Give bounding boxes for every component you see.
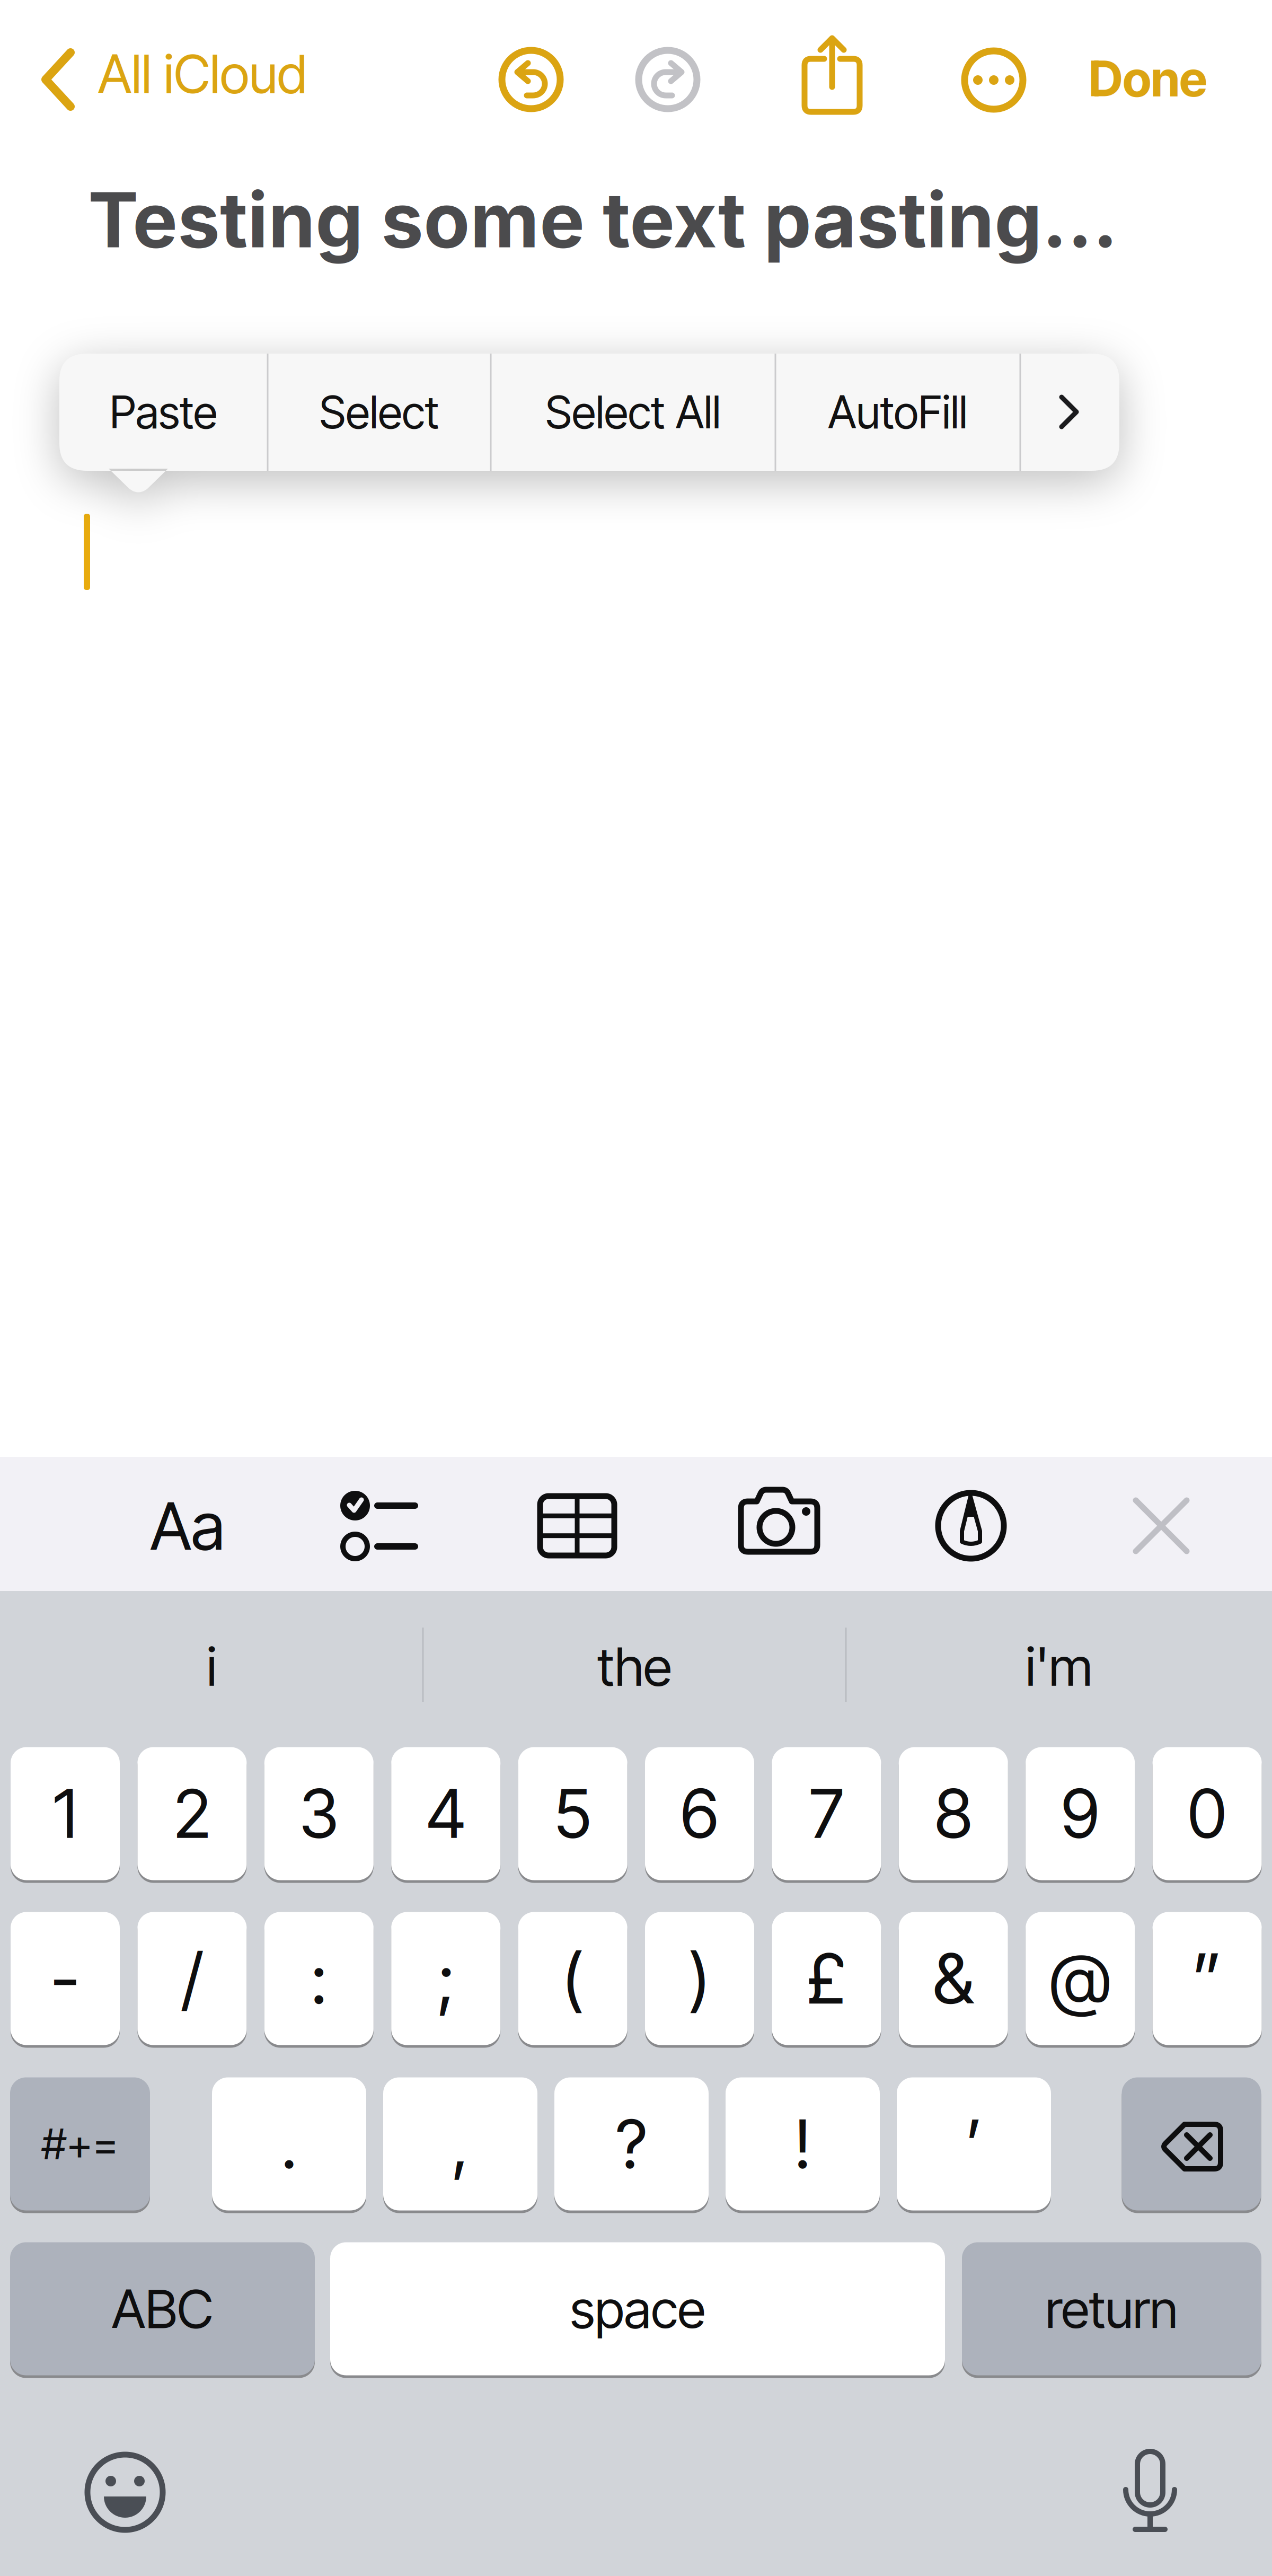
button[interactable]: Done [1068,36,1227,121]
button[interactable]: i [0,1591,423,1742]
button[interactable] [960,47,1027,113]
staticText: #+= [42,2118,118,2170]
staticText: All iCloud [98,42,307,106]
button[interactable] [1098,1462,1225,1589]
staticText: Aa [150,1486,225,1565]
staticText: i [207,1634,217,1698]
staticText: : [311,1937,327,2020]
staticText: return [1045,2277,1178,2340]
staticText: Select [319,385,439,439]
staticText: i'm [1026,1634,1092,1698]
button[interactable]: ) [645,1910,754,2047]
staticText: @ [1050,1937,1111,2020]
staticText: ” [1192,1937,1222,2020]
button[interactable] [80,2447,170,2537]
staticText: AutoFill [828,385,968,439]
button[interactable]: ABC [10,2240,315,2377]
button[interactable]: i'm [847,1591,1271,1742]
button[interactable] [514,1462,641,1589]
staticText: ) [689,1937,710,2020]
button[interactable]: 1 [11,1745,120,1882]
staticText: 8 [935,1773,972,1854]
button[interactable]: £ [772,1910,881,2047]
button[interactable]: space [330,2240,945,2377]
staticText: . [281,2104,297,2184]
staticText: Paste [110,385,217,439]
button[interactable]: Paste [59,354,268,471]
button[interactable] [715,1462,843,1589]
button[interactable]: the [424,1591,845,1742]
button[interactable] [1020,354,1119,471]
button[interactable]: 2 [137,1745,247,1882]
staticText: ; [437,1937,455,2020]
button[interactable] [498,46,564,113]
button[interactable]: Aa [124,1462,251,1589]
button[interactable]: & [899,1910,1008,2047]
button[interactable]: 4 [391,1745,500,1882]
staticText: 7 [809,1773,844,1854]
button[interactable] [1122,2075,1261,2213]
button[interactable]: Select [268,354,491,471]
staticText: 2 [174,1773,211,1854]
button[interactable]: ? [554,2075,709,2213]
staticText: 3 [299,1773,339,1854]
staticText: 1 [53,1773,77,1854]
button[interactable]: 9 [1026,1745,1135,1882]
staticText: space [570,2277,705,2340]
button[interactable]: ’ [897,2075,1051,2213]
button[interactable]: ! [726,2075,880,2213]
button[interactable] [634,46,701,113]
button[interactable] [795,30,869,120]
staticText: 0 [1188,1773,1226,1854]
button[interactable]: , [383,2075,537,2213]
staticText: 4 [426,1773,466,1854]
button[interactable]: 7 [772,1745,881,1882]
staticText: ABC [112,2277,213,2341]
button[interactable]: return [962,2240,1261,2377]
button[interactable]: All iCloud [34,37,310,122]
staticText: 9 [1061,1773,1099,1854]
staticText: £ [806,1937,847,2020]
staticText: ? [616,2104,647,2184]
staticText: , [452,2104,469,2184]
staticText: 6 [681,1773,719,1854]
button[interactable] [311,1462,438,1589]
button[interactable]: . [212,2075,366,2213]
button[interactable]: #+= [10,2075,150,2213]
button[interactable]: / [137,1910,247,2047]
staticText: - [51,1937,79,2020]
staticText: Testing some text pasting… [88,174,1118,266]
button[interactable]: : [264,1910,374,2047]
button[interactable]: ; [391,1910,500,2047]
staticText: Select All [545,385,721,439]
button[interactable] [907,1462,1035,1589]
button[interactable]: 0 [1153,1745,1262,1882]
staticText: ! [794,2104,811,2184]
button[interactable]: 5 [518,1745,627,1882]
button[interactable]: 8 [899,1745,1008,1882]
button[interactable]: @ [1026,1910,1135,2047]
staticText: & [933,1937,974,2020]
button[interactable]: 6 [645,1745,754,1882]
button[interactable]: ” [1153,1910,1262,2047]
staticText: ( [562,1937,584,2020]
button[interactable]: 3 [264,1745,374,1882]
button[interactable]: Select All [491,354,775,471]
staticText: 5 [554,1773,591,1854]
button[interactable] [1105,2442,1195,2537]
button[interactable]: - [11,1910,120,2047]
staticText: the [597,1634,672,1698]
staticText: Done [1089,49,1207,108]
staticText: ’ [966,2104,982,2184]
button[interactable]: AutoFill [775,354,1020,471]
staticText: / [181,1937,203,2020]
button[interactable]: ( [518,1910,627,2047]
